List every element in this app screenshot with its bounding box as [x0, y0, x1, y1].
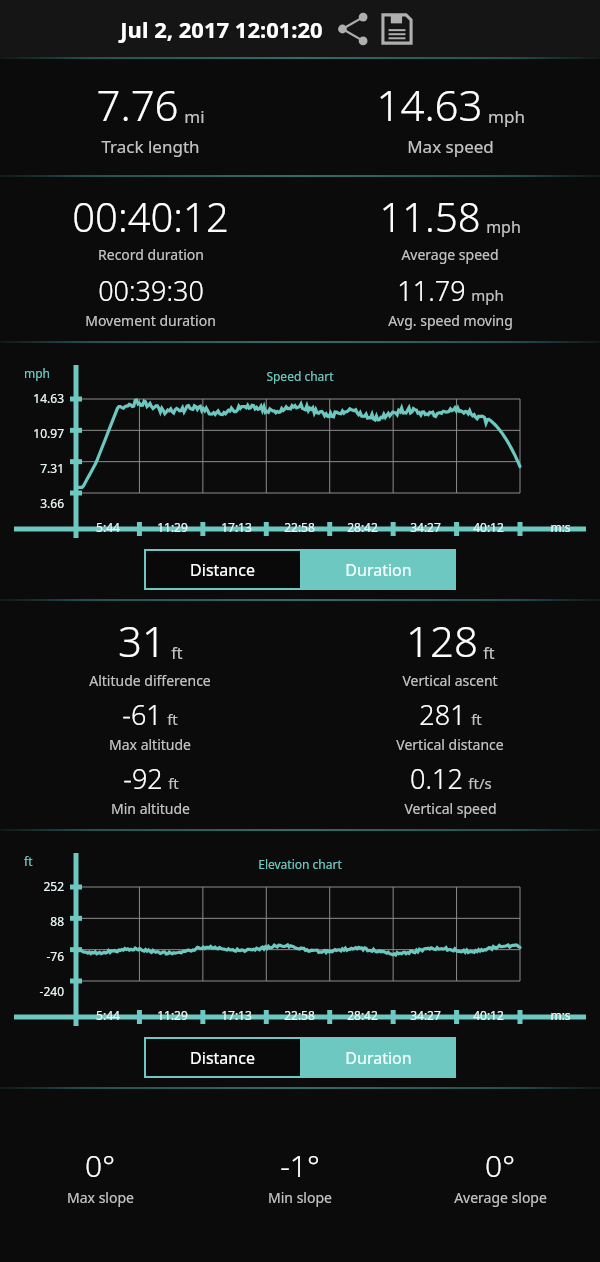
staticText: ft: [167, 709, 178, 729]
staticText: 11.58: [379, 189, 481, 243]
staticText: 5:44: [96, 1007, 120, 1023]
button[interactable]: Save: [375, 7, 419, 51]
staticText: ft/s: [468, 773, 492, 793]
staticText: 17:13: [221, 1007, 252, 1023]
button[interactable]: -61: [109, 696, 191, 754]
staticText: mi: [184, 105, 205, 128]
staticText: Average speed: [401, 245, 499, 264]
staticText: Duration: [345, 1047, 412, 1069]
staticText: Speed chart: [266, 368, 334, 384]
staticText: 3.66: [0, 495, 64, 511]
staticText: mph: [486, 216, 521, 238]
staticText: 22:58: [284, 519, 315, 535]
staticText: Movement duration: [85, 311, 216, 330]
staticText: -240: [0, 983, 64, 999]
button[interactable]: 128: [402, 612, 498, 690]
staticText: ft: [171, 642, 183, 664]
button[interactable]: Duration: [300, 1037, 456, 1078]
staticText: 22:58: [284, 1007, 315, 1023]
staticText: 281: [419, 696, 466, 733]
button[interactable]: 7.76: [0, 76, 300, 158]
staticText: Record duration: [98, 245, 204, 264]
button[interactable]: 0°: [0, 1145, 200, 1207]
button[interactable]: 0°: [400, 1145, 600, 1207]
staticText: ft: [483, 642, 495, 664]
button[interactable]: Distance: [144, 1037, 300, 1078]
staticText: 252: [0, 878, 64, 894]
button[interactable]: 11.58: [379, 189, 521, 264]
button[interactable]: Distance: [144, 549, 300, 590]
button[interactable]: Share: [331, 7, 375, 51]
staticText: 128: [406, 612, 478, 669]
staticText: 0°: [85, 1145, 115, 1186]
button[interactable]: 00:40:12: [72, 189, 229, 264]
staticText: 5:44: [96, 519, 120, 535]
staticText: 34:27: [410, 1007, 441, 1023]
staticText: 7.31: [0, 460, 64, 476]
staticText: 17:13: [221, 519, 252, 535]
staticText: Altitude difference: [89, 671, 211, 690]
staticText: mph: [488, 105, 525, 128]
staticText: m:s: [550, 519, 571, 535]
staticText: Distance: [190, 1047, 255, 1069]
button[interactable]: 31: [89, 612, 211, 690]
staticText: 40:12: [473, 519, 504, 535]
staticText: 14.63: [376, 76, 483, 133]
staticText: -92: [123, 760, 163, 797]
staticText: mph: [471, 285, 504, 305]
staticText: Distance: [190, 559, 255, 581]
staticText: 10.97: [0, 425, 64, 441]
staticText: 00:39:30: [98, 272, 204, 309]
staticText: Avg. speed moving: [388, 311, 513, 330]
staticText: ft: [24, 853, 33, 869]
button[interactable]: 14.63: [300, 76, 600, 158]
staticText: -76: [0, 948, 64, 964]
staticText: 11:29: [157, 1007, 188, 1023]
staticText: 28:42: [347, 519, 378, 535]
staticText: 7.76: [96, 76, 179, 133]
staticText: ft: [168, 773, 179, 793]
staticText: Elevation chart: [258, 856, 342, 872]
staticText: Vertical distance: [396, 735, 504, 754]
button[interactable]: 0.12: [404, 760, 497, 818]
staticText: m:s: [550, 1007, 571, 1023]
staticText: Average slope: [454, 1188, 547, 1207]
staticText: Min slope: [268, 1188, 332, 1207]
staticText: 40:12: [473, 1007, 504, 1023]
staticText: 28:42: [347, 1007, 378, 1023]
staticText: 34:27: [410, 519, 441, 535]
staticText: 14.63: [0, 390, 64, 406]
staticText: Jul 2, 2017 12:01:20: [120, 14, 323, 44]
staticText: mph: [24, 365, 51, 381]
button[interactable]: -1°: [200, 1145, 400, 1207]
staticText: 0°: [485, 1145, 515, 1186]
staticText: Vertical ascent: [402, 671, 498, 690]
staticText: 11:29: [157, 519, 188, 535]
staticText: -1°: [280, 1145, 320, 1186]
staticText: ft: [471, 709, 482, 729]
button[interactable]: -92: [111, 760, 190, 818]
staticText: -61: [122, 696, 162, 733]
button[interactable]: 00:39:30: [85, 272, 216, 330]
staticText: 00:40:12: [72, 189, 229, 243]
staticText: Max slope: [67, 1188, 134, 1207]
button[interactable]: 281: [396, 696, 504, 754]
staticText: 0.12: [410, 760, 463, 797]
button[interactable]: 11.79: [388, 272, 513, 330]
staticText: Duration: [345, 559, 412, 581]
staticText: Min altitude: [111, 799, 190, 818]
staticText: Vertical speed: [404, 799, 497, 818]
staticText: 11.79: [397, 272, 466, 309]
button[interactable]: Duration: [300, 549, 456, 590]
staticText: Max speed: [407, 135, 494, 158]
staticText: Max altitude: [109, 735, 191, 754]
staticText: 88: [0, 913, 64, 929]
staticText: Track length: [101, 135, 200, 158]
staticText: 31: [118, 612, 166, 669]
